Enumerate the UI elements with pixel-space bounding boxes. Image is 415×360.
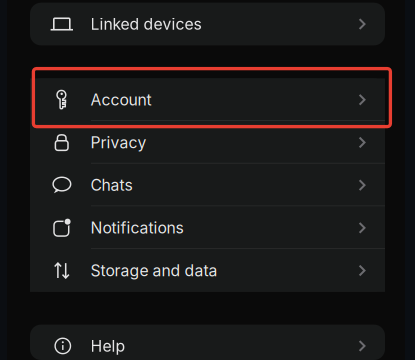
staticText: Account — [90, 90, 151, 109]
staticText: Help — [90, 336, 125, 355]
staticText: Notifications — [90, 218, 183, 237]
staticText: Chats — [90, 176, 132, 195]
staticText: Privacy — [90, 133, 146, 152]
button[interactable]: Linked devices — [30, 3, 385, 45]
staticText: Linked devices — [90, 14, 201, 33]
button[interactable]: Help — [30, 325, 385, 360]
button[interactable]: Privacy — [30, 121, 385, 164]
button[interactable]: Storage and data — [30, 249, 385, 292]
button[interactable]: Account — [30, 78, 385, 121]
button[interactable]: Notifications — [30, 206, 385, 249]
staticText: Storage and data — [90, 261, 217, 280]
button[interactable]: Chats — [30, 164, 385, 206]
